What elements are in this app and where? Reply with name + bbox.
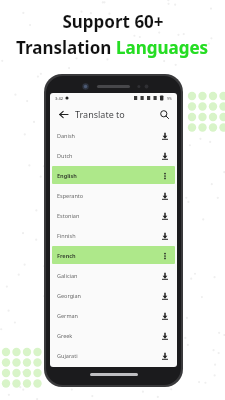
staticText: Greek	[57, 332, 73, 339]
staticText: Gujarati	[57, 352, 78, 359]
staticText: Finnish	[57, 232, 76, 239]
staticText: Translation	[16, 36, 116, 59]
staticText: German	[57, 312, 79, 319]
staticText: Georgian	[57, 292, 81, 299]
button[interactable]: Download	[159, 350, 170, 361]
button[interactable]: More options	[159, 170, 170, 181]
button[interactable]: Download	[159, 330, 170, 341]
button[interactable]: Georgian	[52, 286, 175, 304]
staticText: Galician	[57, 272, 78, 279]
button[interactable]: Download	[159, 210, 170, 221]
staticText: Translate to	[75, 108, 125, 120]
staticText: 9%	[167, 96, 172, 101]
button[interactable]: English	[52, 166, 175, 184]
button[interactable]: Danish	[52, 126, 175, 144]
staticText: Support 60+	[62, 10, 164, 33]
button[interactable]: Download	[159, 310, 170, 321]
button[interactable]: Download	[159, 190, 170, 201]
button[interactable]: Download	[159, 270, 170, 281]
button[interactable]: Download	[159, 130, 170, 141]
button[interactable]: Download	[159, 290, 170, 301]
button[interactable]: Dutch	[52, 146, 175, 164]
button[interactable]: Esperanto	[52, 186, 175, 204]
button[interactable]: Back	[56, 107, 70, 121]
button[interactable]: Download	[159, 230, 170, 241]
staticText: English	[57, 172, 77, 179]
staticText: Dutch	[57, 152, 73, 159]
button[interactable]: French	[52, 246, 175, 264]
button[interactable]: Estonian	[52, 206, 175, 224]
staticText: Estonian	[57, 212, 80, 219]
button[interactable]: Galician	[52, 266, 175, 284]
staticText: French	[57, 252, 76, 259]
button[interactable]: Greek	[52, 326, 175, 344]
button[interactable]: German	[52, 306, 175, 324]
staticText: Danish	[57, 132, 75, 139]
button[interactable]: Download	[159, 150, 170, 161]
button[interactable]: Gujarati	[52, 346, 175, 364]
button[interactable]: More options	[159, 250, 170, 261]
staticText: 3:42	[55, 96, 63, 101]
staticText: Esperanto	[57, 192, 84, 199]
button[interactable]: Finnish	[52, 226, 175, 244]
button[interactable]: Search	[157, 107, 171, 121]
staticText: Languages	[116, 36, 209, 59]
